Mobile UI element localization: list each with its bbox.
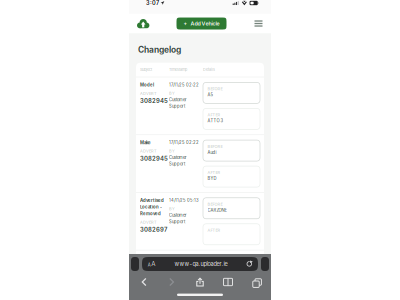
staticText: Customer <box>169 270 187 275</box>
staticText: Location - <box>140 204 162 210</box>
staticText: BY <box>169 149 175 153</box>
button[interactable]: Page settings <box>147 260 156 267</box>
staticText: Advert <box>140 255 155 261</box>
staticText: AFTER <box>207 228 220 233</box>
staticText: 17/11/25 02:22 <box>169 140 199 145</box>
staticText: ATTO 3 <box>207 118 223 123</box>
staticText: CARZONE <box>207 208 226 213</box>
button[interactable]: Reload <box>246 260 253 267</box>
button[interactable]: Uploader home <box>136 17 150 29</box>
staticText: + <box>183 20 187 27</box>
button[interactable]: Share <box>192 275 208 288</box>
staticText: Support <box>169 104 185 109</box>
button[interactable]: A <box>142 257 258 271</box>
staticText: www-qa.uploader.ie <box>174 261 227 267</box>
button[interactable]: Menu <box>253 18 264 29</box>
staticText: A <box>148 262 151 267</box>
button[interactable]: Bookmarks <box>220 275 236 288</box>
staticText: Customer <box>169 97 187 102</box>
staticText: BY <box>169 91 175 96</box>
staticText: Advertised <box>140 198 164 203</box>
staticText: Audi <box>207 150 216 155</box>
staticText: Removed <box>140 211 161 216</box>
staticText: A <box>151 260 155 267</box>
staticText: Changelog <box>138 44 181 55</box>
staticText: Model <box>140 82 154 88</box>
button[interactable]: Back <box>136 275 152 288</box>
staticText: 14/11/25 05:13 <box>169 198 199 203</box>
staticText: BYD <box>207 176 216 181</box>
staticText: BY <box>169 264 175 269</box>
staticText: BEFORE <box>207 86 222 91</box>
staticText: ADVERT <box>140 220 157 225</box>
button[interactable]: Forward <box>164 275 180 288</box>
button[interactable]: + <box>176 17 226 29</box>
staticText: 17/11/25 02:22 <box>169 82 199 87</box>
staticText: 3082697 <box>140 270 167 278</box>
staticText: A5 <box>207 92 213 97</box>
staticText: 3082697 <box>140 226 167 233</box>
staticText: BY <box>169 206 175 211</box>
staticText: Details <box>203 67 215 72</box>
staticText: BEFORE <box>207 144 222 149</box>
staticText: Support <box>169 219 185 224</box>
staticText: BEFORE <box>207 259 222 264</box>
staticText: 3:07 <box>146 0 159 6</box>
staticText: ADVERT <box>140 149 157 153</box>
button[interactable]: Tabs <box>248 275 264 288</box>
staticText: Add Vehicle <box>190 20 219 27</box>
staticText: Customer <box>169 213 187 218</box>
staticText: AFTER <box>207 170 220 175</box>
staticText: 3082945 <box>140 155 168 162</box>
staticText: Support <box>169 277 185 282</box>
staticText: ADVERT <box>140 264 157 269</box>
staticText: 3082945 <box>140 97 168 104</box>
staticText: ADVERT <box>140 91 157 96</box>
staticText: AFTER <box>207 112 220 117</box>
staticText: 14/11/25 05:13 <box>169 255 199 260</box>
staticText: Timestamp <box>169 67 187 72</box>
staticText: BEFORE <box>207 202 222 207</box>
staticText: Make <box>140 140 151 145</box>
staticText: Support <box>169 161 185 166</box>
staticText: Customer <box>169 155 187 160</box>
staticText: Subject <box>140 67 152 72</box>
